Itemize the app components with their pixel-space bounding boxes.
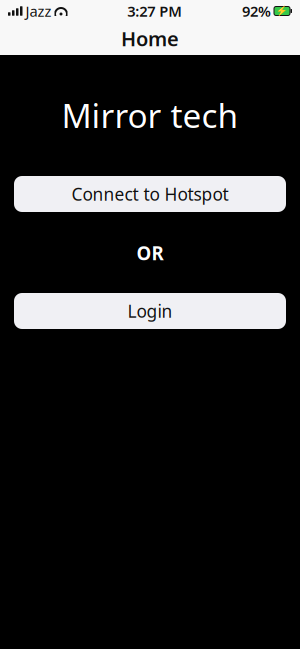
staticText: Home	[121, 25, 179, 52]
staticText: OR	[136, 241, 163, 265]
button[interactable]: Login	[14, 293, 286, 329]
staticText: ⚡	[276, 6, 288, 16]
staticText: Mirror tech	[61, 93, 238, 137]
staticText: Login	[127, 299, 172, 322]
staticText: Jazz	[25, 1, 51, 21]
staticText: Connect to Hotspot	[71, 182, 228, 205]
staticText: 92%	[242, 1, 271, 21]
button[interactable]: Connect to Hotspot	[14, 176, 286, 212]
staticText: 3:27 PM	[127, 1, 182, 21]
